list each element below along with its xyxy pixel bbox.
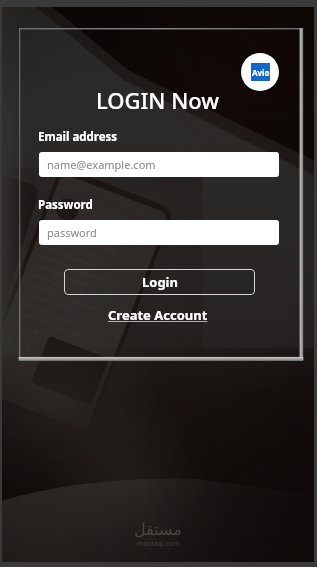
button[interactable]: name@example.com bbox=[39, 152, 279, 177]
staticText: LOGIN Now bbox=[96, 85, 219, 115]
staticText: Email address bbox=[38, 129, 118, 145]
staticText: Create Account bbox=[108, 306, 208, 324]
staticText: name@example.com bbox=[47, 157, 156, 172]
button[interactable]: Login bbox=[64, 269, 255, 295]
button[interactable]: password bbox=[39, 220, 279, 245]
staticText: Avio bbox=[252, 67, 270, 78]
staticText: password bbox=[47, 225, 97, 240]
staticText: Login bbox=[142, 273, 178, 291]
other: Avio logo bbox=[241, 53, 279, 91]
staticText: Password bbox=[38, 197, 93, 213]
button[interactable]: Create Account bbox=[108, 306, 208, 324]
staticText: mostaql.com bbox=[137, 539, 180, 549]
staticText: مستقل bbox=[134, 520, 182, 539]
